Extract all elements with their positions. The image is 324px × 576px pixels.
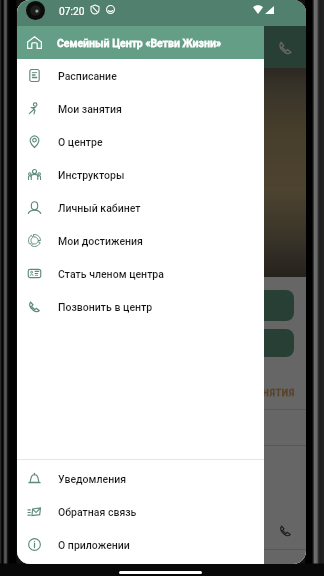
button[interactable]: Уведомления <box>17 462 264 495</box>
button[interactable]: Мои достижения <box>17 224 264 257</box>
button[interactable]: ВСЕ ЗАНЯТИЯ <box>228 388 296 398</box>
button[interactable]: Семейный Центр «Ветви Жизни» <box>17 26 264 59</box>
other: Front camera <box>26 1 45 20</box>
button[interactable]: Обратная связь <box>17 495 264 528</box>
staticText: Расписание <box>58 70 117 82</box>
staticText: О приложении <box>58 539 130 551</box>
button[interactable]: О центре <box>17 125 264 158</box>
staticText: Стать членом центра <box>58 268 164 280</box>
button[interactable] <box>29 290 294 321</box>
button[interactable]: Личный кабинет <box>17 191 264 224</box>
staticText: Уведомления <box>58 473 127 485</box>
button[interactable]: Расписание <box>17 59 264 92</box>
button[interactable]: Позвонить в центр <box>17 290 264 323</box>
staticText: Семейный Центр «Ветви Жизни» <box>57 37 222 49</box>
staticText: 07:20 <box>59 6 85 18</box>
button[interactable]: Call the centre <box>271 33 299 61</box>
button[interactable] <box>29 329 294 357</box>
staticText: О центре <box>58 136 103 148</box>
staticText: Позвонить в центр <box>58 301 153 313</box>
button[interactable]: Инструкторы <box>17 158 264 191</box>
button[interactable]: Стать членом центра <box>17 257 264 290</box>
button[interactable]: Мои занятия <box>17 92 264 125</box>
staticText: Мои занятия <box>58 103 122 115</box>
staticText: Обратная связь <box>58 506 137 518</box>
staticText: Мои достижения <box>58 235 143 247</box>
staticText: Личный кабинет <box>58 202 141 214</box>
staticText: Инструкторы <box>58 169 125 181</box>
button[interactable]: О приложении <box>17 528 264 561</box>
